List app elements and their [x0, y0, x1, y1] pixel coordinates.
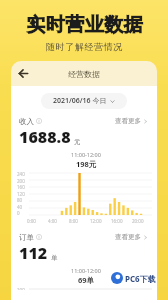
staticText: 8:00: [69, 218, 78, 224]
staticText: 查看更多: [115, 117, 141, 125]
staticText: 160: [17, 184, 25, 190]
staticText: 11:00-12:00: [71, 151, 101, 158]
staticText: 订单: [19, 233, 34, 242]
staticText: 元: [74, 138, 81, 146]
staticText: 4:00: [48, 218, 57, 224]
staticText: 经营数据: [68, 69, 100, 79]
button[interactable]: 返回: [16, 66, 31, 81]
staticText: 198元: [76, 159, 97, 169]
staticText: 200: [17, 178, 25, 184]
button[interactable]: 2021/06/16 今日: [41, 93, 127, 109]
staticText: 120: [17, 191, 25, 197]
staticText: 20:00: [132, 218, 144, 224]
staticText: 实时营业数据: [26, 13, 143, 37]
staticText: 11:00-12:00: [71, 267, 101, 274]
staticText: 112: [19, 242, 48, 264]
staticText: 16:00: [111, 218, 123, 224]
button[interactable]: 查看更多: [114, 232, 149, 242]
staticText: PC6下载: [125, 273, 156, 284]
staticText: 随时了解经营情况: [46, 41, 123, 52]
staticText: 单: [51, 254, 58, 262]
staticText: 1688.8: [19, 126, 71, 148]
staticText: 2021/06/16 今日: [53, 96, 107, 106]
staticText: 40: [17, 204, 23, 210]
staticText: 收入: [19, 117, 34, 126]
button[interactable]: 查看更多: [114, 116, 149, 126]
staticText: 69单: [78, 275, 95, 285]
staticText: 240: [17, 171, 25, 177]
staticText: 查看更多: [115, 233, 141, 241]
staticText: 12:00: [90, 218, 102, 224]
staticText: 100: [17, 287, 25, 290]
staticText: 0: [17, 210, 20, 216]
staticText: 80: [17, 197, 23, 203]
staticText: 0:00: [27, 218, 36, 224]
